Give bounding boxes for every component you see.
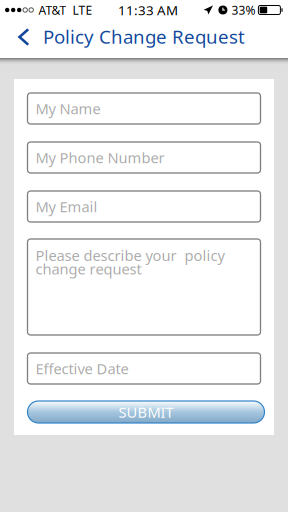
staticText: 11:33 AM <box>118 1 178 19</box>
staticText: My Name <box>35 99 100 118</box>
button[interactable]: My Phone Number <box>27 142 260 173</box>
staticText: Please describe your policy <box>35 245 224 265</box>
staticText: SUBMIT <box>118 402 173 422</box>
staticText: My Email <box>35 197 97 216</box>
staticText: LTE <box>72 2 92 18</box>
staticText: 33% <box>231 2 255 18</box>
button[interactable]: Back <box>0 20 39 58</box>
staticText: AT&T <box>38 2 66 18</box>
button[interactable]: My Name <box>27 93 260 124</box>
staticText: Policy Change Request <box>43 24 245 49</box>
staticText: My Phone Number <box>35 148 164 167</box>
staticText: change request <box>35 259 141 278</box>
staticText: Effective Date <box>35 359 128 378</box>
button[interactable]: My Email <box>27 191 260 222</box>
button[interactable]: SUBMIT <box>23 401 264 423</box>
button[interactable]: Effective Date <box>27 353 260 384</box>
button[interactable]: Please describe your policy <box>27 239 260 335</box>
